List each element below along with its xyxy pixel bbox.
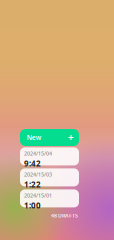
button[interactable]: 2024/15/03: [20, 170, 79, 188]
staticText: 2024/15/03: [24, 171, 52, 178]
staticText: 1:00: [24, 200, 41, 211]
staticText: New: [27, 133, 42, 142]
staticText: 48 DRAFTS: [51, 212, 78, 219]
staticText: 9:42: [24, 158, 41, 169]
staticText: 1:22: [24, 179, 41, 190]
staticText: 2024/15/04: [24, 150, 52, 157]
button[interactable]: New: [20, 129, 79, 146]
button[interactable]: 48 DRAFTS: [51, 212, 78, 219]
button[interactable]: 2024/15/01: [20, 191, 79, 209]
button[interactable]: 2024/15/04: [20, 149, 79, 167]
staticText: 2024/15/01: [24, 192, 52, 199]
